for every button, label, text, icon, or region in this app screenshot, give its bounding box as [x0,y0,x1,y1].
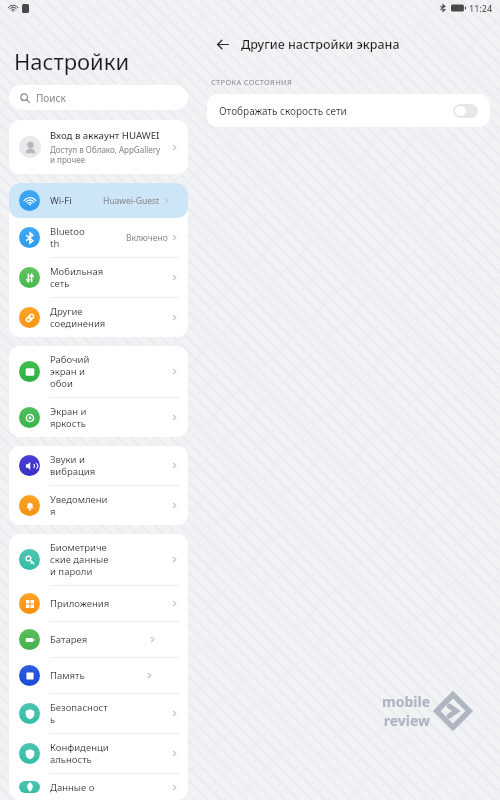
staticText: Биометрические данные и пароли [50,541,110,578]
staticText: СТРОКА СОСТОЯНИЯ [211,77,293,87]
staticText: Другие настройки экрана [241,36,400,53]
button[interactable]: Биометрические данные и пароли [9,534,188,585]
staticText: Данные о местоположении [50,781,110,793]
button[interactable]: Уведомления [9,486,188,525]
staticText: Bluetooth [50,225,88,250]
staticText: Поиск [36,91,66,105]
staticText: Wi-Fi [50,194,72,207]
button[interactable]: Данные о местоположении [9,774,188,800]
button[interactable]: Рабочий экран и обои [9,346,188,397]
staticText: Huawei-Guest [103,195,160,207]
staticText: Уведомления [50,493,110,518]
button[interactable]: Приложения [9,586,188,621]
staticText: mobile [382,692,430,711]
staticText: Другие соединения [50,305,110,330]
staticText: Доступ в Облако, AppGallery и прочее [50,144,161,165]
staticText: Батарея [50,633,88,646]
staticText: Рабочий экран и обои [50,353,110,390]
button[interactable]: Другие соединения [9,298,188,337]
button[interactable]: Поиск [9,85,188,110]
button[interactable]: Безопасность [9,694,188,733]
button[interactable]: Батарея [9,622,188,657]
button[interactable]: Конфиденциальность [9,734,188,773]
staticText: Память [50,669,85,682]
staticText: Вход в аккаунт HUAWEI [50,129,160,142]
staticText: Звуки и вибрация [50,453,110,478]
button[interactable]: Экран и яркость [9,398,188,437]
staticText: Мобильная сеть [50,265,110,290]
button[interactable]: Вход в аккаунт HUAWEI [9,120,188,174]
staticText: review [383,711,430,730]
staticText: Включено [126,232,168,244]
button[interactable]: Звуки и вибрация [9,446,188,485]
staticText: Экран и яркость [50,405,110,430]
staticText: Отображать скорость сети [219,104,453,118]
staticText: 11:24 [469,2,493,14]
staticText: Приложения [50,597,110,610]
button[interactable]: Bluetooth [9,218,188,257]
staticText: Настройки [14,46,130,76]
button[interactable]: Отображать скорость сети [207,94,490,127]
button[interactable]: Память [9,658,188,693]
staticText: Безопасность [50,701,110,726]
button[interactable]: Wi-Fi [9,183,188,218]
staticText: Конфиденциальность [50,741,110,766]
button[interactable]: Мобильная сеть [9,258,188,297]
button[interactable]: Back [211,33,233,55]
